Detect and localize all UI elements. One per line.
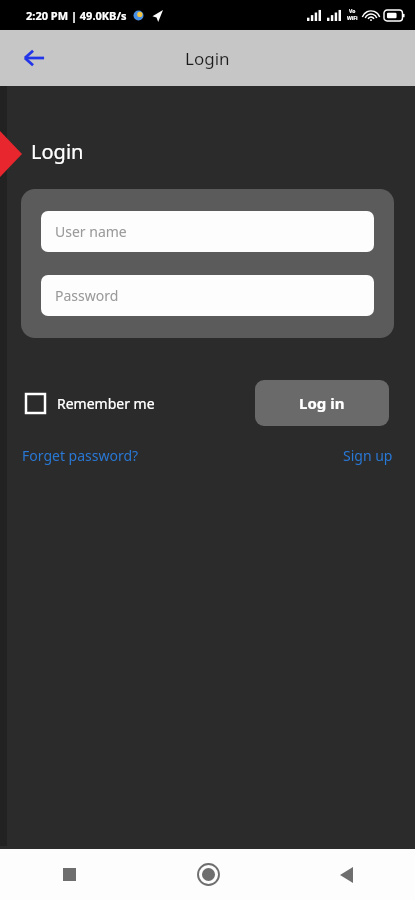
staticText: Vo — [349, 8, 356, 15]
button[interactable]: Forget password? — [22, 446, 139, 465]
staticText: Forget password? — [22, 446, 139, 465]
staticText: 2:20 PM | 49.0KB/s — [26, 8, 127, 23]
button[interactable]: Remember me — [26, 394, 155, 413]
staticText: Login — [31, 138, 84, 165]
button[interactable]: User name — [41, 211, 374, 252]
staticText: Login — [185, 47, 230, 70]
button[interactable]: Sign up — [343, 446, 393, 465]
button[interactable]: Log in — [255, 380, 389, 426]
button[interactable]: Password — [41, 275, 374, 316]
button[interactable]: Recent apps — [0, 849, 139, 900]
staticText: WiFi — [347, 15, 358, 22]
staticText: User name — [55, 222, 127, 241]
staticText: Log in — [299, 393, 345, 413]
staticText: Remember me — [57, 394, 155, 413]
button[interactable]: Back — [277, 849, 415, 900]
button[interactable]: Back — [12, 36, 56, 80]
staticText: Password — [55, 286, 119, 305]
staticText: Sign up — [343, 446, 393, 465]
button[interactable]: Home — [139, 849, 277, 900]
